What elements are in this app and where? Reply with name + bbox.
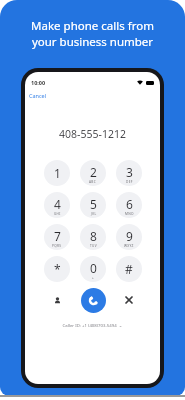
button[interactable]: 3 [116, 160, 142, 186]
staticText: Make phone calls from your business numb… [0, 18, 185, 49]
button[interactable]: * [44, 256, 70, 282]
staticText: GHI [54, 212, 61, 216]
button[interactable]: # [116, 256, 142, 282]
staticText: 0 [90, 260, 97, 276]
staticText: PQRS [52, 244, 62, 248]
button[interactable]: Call [81, 288, 106, 313]
button[interactable]: 7 [44, 224, 70, 250]
staticText: # [125, 261, 133, 277]
staticText: 3 [126, 164, 133, 180]
staticText: + [92, 276, 95, 280]
button[interactable]: 0 [80, 256, 106, 282]
staticText: 1 [54, 165, 61, 181]
staticText: 408-555-1212 [25, 127, 160, 141]
button[interactable]: 4 [44, 192, 70, 218]
staticText: JKL [91, 212, 97, 216]
button[interactable]: 5 [80, 192, 106, 218]
staticText: Cancel [29, 92, 47, 99]
staticText: 6 [126, 196, 133, 212]
staticText: 10:00 [31, 79, 46, 86]
staticText: 8 [90, 228, 97, 244]
staticText: MNO [125, 212, 134, 216]
staticText: Caller ID: +1 (408)703-5494 ⌄ [25, 322, 160, 328]
staticText: TUV [90, 244, 97, 248]
button[interactable]: 9 [116, 224, 142, 250]
staticText: WXYZ [124, 244, 134, 248]
button[interactable]: 1 [44, 160, 70, 186]
button[interactable]: Delete [116, 287, 142, 313]
staticText: 4 [54, 196, 61, 212]
staticText: 9 [126, 228, 133, 244]
staticText: * [54, 261, 61, 277]
staticText: ABC [89, 180, 97, 184]
staticText: 5 [90, 196, 97, 212]
staticText: DEF [126, 180, 133, 184]
staticText: 7 [54, 228, 61, 244]
button[interactable]: 2 [80, 160, 106, 186]
button[interactable]: Cancel [27, 90, 49, 101]
button[interactable]: 6 [116, 192, 142, 218]
button[interactable]: Contacts [44, 287, 70, 313]
staticText: 2 [90, 164, 97, 180]
button[interactable]: 8 [80, 224, 106, 250]
